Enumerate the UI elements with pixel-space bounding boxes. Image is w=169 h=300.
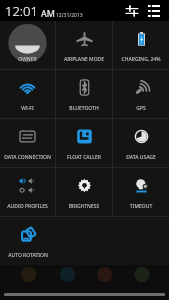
button[interactable]: BLUETOOTH bbox=[56, 70, 112, 118]
button[interactable]: Owner profile bbox=[0, 21, 55, 69]
staticText: TIMEOUT bbox=[113, 203, 169, 210]
staticText: BLUETOOTH bbox=[56, 105, 112, 112]
button[interactable]: AUTO ROTATION bbox=[0, 217, 56, 265]
staticText: CHARGING, 24% bbox=[113, 56, 169, 63]
button[interactable]: FLOAT CALLER bbox=[56, 119, 112, 167]
button[interactable]: AUDIO PROFILES bbox=[0, 168, 55, 216]
staticText: AIRPLANE MODE bbox=[56, 56, 112, 63]
staticText: 12/31/2013 bbox=[56, 12, 83, 19]
button[interactable]: AIRPLANE MODE bbox=[56, 21, 112, 69]
button[interactable]: BRIGHTNESS bbox=[56, 168, 112, 216]
staticText: AM bbox=[41, 7, 55, 19]
staticText: DATA USAGE bbox=[113, 154, 169, 161]
button[interactable]: DATA USAGE bbox=[113, 119, 169, 167]
staticText: GPS bbox=[113, 105, 169, 112]
button[interactable]: Notifications list bbox=[145, 2, 163, 20]
staticText: OWNER bbox=[0, 56, 55, 63]
staticText: FLOAT CALLER bbox=[56, 154, 112, 161]
staticText: WI-FI bbox=[0, 105, 55, 112]
staticText: BRIGHTNESS bbox=[56, 203, 112, 210]
button[interactable]: TIMEOUT bbox=[113, 168, 169, 216]
button[interactable]: Quick settings bbox=[123, 2, 141, 20]
staticText: 12:01 bbox=[5, 2, 38, 20]
staticText: AUTO ROTATION bbox=[0, 252, 56, 259]
button[interactable]: CHARGING, 24% bbox=[113, 21, 169, 69]
staticText: AUDIO PROFILES bbox=[0, 203, 55, 210]
button[interactable]: DATA CONNECTION bbox=[0, 119, 55, 167]
staticText: DATA CONNECTION bbox=[0, 154, 55, 161]
button[interactable]: GPS bbox=[113, 70, 169, 118]
button[interactable]: WI-FI bbox=[0, 70, 55, 118]
button[interactable]: Close shade bbox=[0, 288, 169, 300]
